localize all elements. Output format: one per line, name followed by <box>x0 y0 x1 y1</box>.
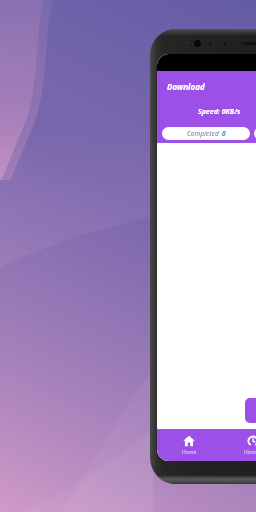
staticText: Home <box>182 449 197 456</box>
staticText: Speed: 0KB/s <box>198 107 241 117</box>
staticText: History <box>244 449 256 456</box>
button[interactable]: Home <box>157 429 221 461</box>
staticText: 0 <box>222 129 226 138</box>
button[interactable]: Running <box>254 127 256 140</box>
staticText: Download <box>167 81 205 92</box>
staticText: Completed <box>187 129 219 138</box>
button[interactable]: History <box>221 429 256 461</box>
button[interactable]: Completed <box>162 127 250 140</box>
button[interactable]: Add download <box>245 398 256 423</box>
